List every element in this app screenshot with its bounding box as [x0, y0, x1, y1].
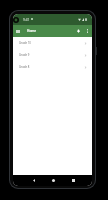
- button[interactable]: Back: [29, 175, 38, 186]
- button[interactable]: Home: [49, 175, 58, 186]
- button[interactable]: Grade 8: [13, 61, 92, 73]
- staticText: Grade 10: [19, 41, 31, 45]
- button[interactable]: Open navigation menu: [13, 25, 23, 37]
- staticText: Home: [27, 29, 37, 33]
- button[interactable]: More options: [83, 25, 92, 37]
- button[interactable]: Grade 10: [13, 37, 92, 49]
- button[interactable]: Recent apps: [69, 175, 78, 186]
- button[interactable]: Notifications: [74, 25, 83, 37]
- staticText: Grade 8: [19, 65, 30, 69]
- button[interactable]: Grade 9: [13, 49, 92, 61]
- staticText: Grade 9: [19, 53, 30, 57]
- staticText: 9:41: [23, 18, 30, 22]
